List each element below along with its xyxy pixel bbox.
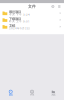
- button[interactable]: More: [51, 4, 54, 9]
- staticText: 昨天 上午 9:01: [9, 20, 29, 23]
- staticText: 文件: [28, 4, 36, 9]
- staticText: 下载项目: [9, 17, 21, 21]
- button[interactable]: 共享: [21, 89, 43, 97]
- staticText: 文稿: [9, 23, 15, 28]
- button[interactable]: 下载项目: [0, 17, 64, 23]
- button[interactable]: 文稿: [0, 23, 64, 30]
- button[interactable]: 浏览: [43, 89, 64, 97]
- button[interactable]: Sort: [58, 4, 61, 9]
- staticText: 浏览: [51, 93, 55, 96]
- staticText: 2024年5月2日: [9, 27, 30, 30]
- staticText: 共享: [30, 93, 34, 96]
- button[interactable]: 最近: [0, 89, 21, 97]
- staticText: 最近项目: [9, 10, 21, 14]
- staticText: 今天 下午 3:24: [9, 13, 30, 16]
- staticText: 最近: [9, 93, 13, 96]
- button[interactable]: 最近项目: [0, 10, 64, 17]
